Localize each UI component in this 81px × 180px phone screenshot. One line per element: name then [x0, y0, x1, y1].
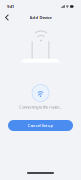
- button[interactable]: Back: [3, 13, 12, 21]
- staticText: 9:41: [7, 4, 14, 9]
- button[interactable]: Cancel Setup: [8, 120, 73, 131]
- staticText: Connecting to the router...: [19, 104, 62, 110]
- staticText: Cancel Setup: [27, 123, 53, 128]
- staticText: Add Device: [29, 15, 51, 20]
